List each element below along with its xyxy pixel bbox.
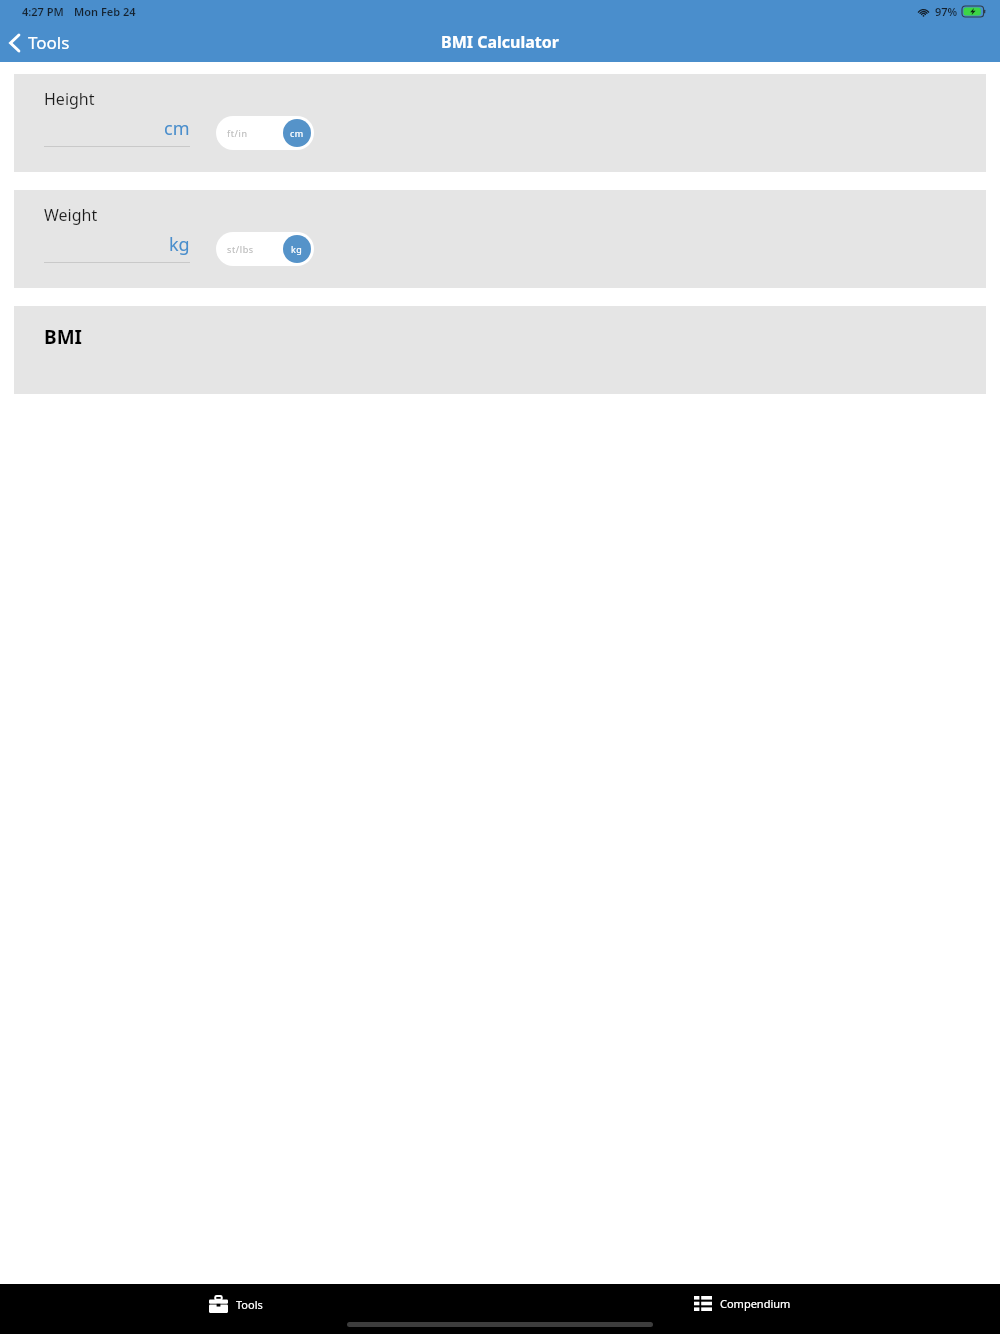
button[interactable]: Compendium (690, 1292, 795, 1315)
staticText: 97% (935, 4, 958, 19)
staticText: Height (44, 88, 95, 110)
staticText: kg (291, 243, 303, 255)
button[interactable]: st/lbs (216, 232, 314, 266)
button[interactable]: Tools (0, 27, 82, 58)
staticText: Mon Feb 24 (74, 4, 136, 19)
button[interactable]: Tools (205, 1292, 267, 1317)
staticText: cm (290, 127, 304, 139)
staticText: st/lbs (227, 243, 254, 255)
staticText: ft/in (227, 127, 248, 139)
staticText: Tools (236, 1297, 263, 1312)
staticText: Compendium (720, 1296, 791, 1311)
staticText: BMI Calculator (441, 31, 559, 53)
staticText: Tools (28, 31, 70, 54)
button[interactable]: ft/in (216, 116, 314, 150)
staticText: kg (169, 232, 190, 257)
button[interactable]: kg (44, 232, 190, 263)
staticText: Weight (44, 204, 98, 226)
staticText: cm (164, 116, 190, 141)
other: Compendium (694, 1296, 712, 1311)
button[interactable]: cm (44, 116, 190, 147)
other: Tools (209, 1296, 228, 1313)
staticText: BMI (44, 324, 82, 350)
staticText: 4:27 PM (22, 4, 64, 19)
